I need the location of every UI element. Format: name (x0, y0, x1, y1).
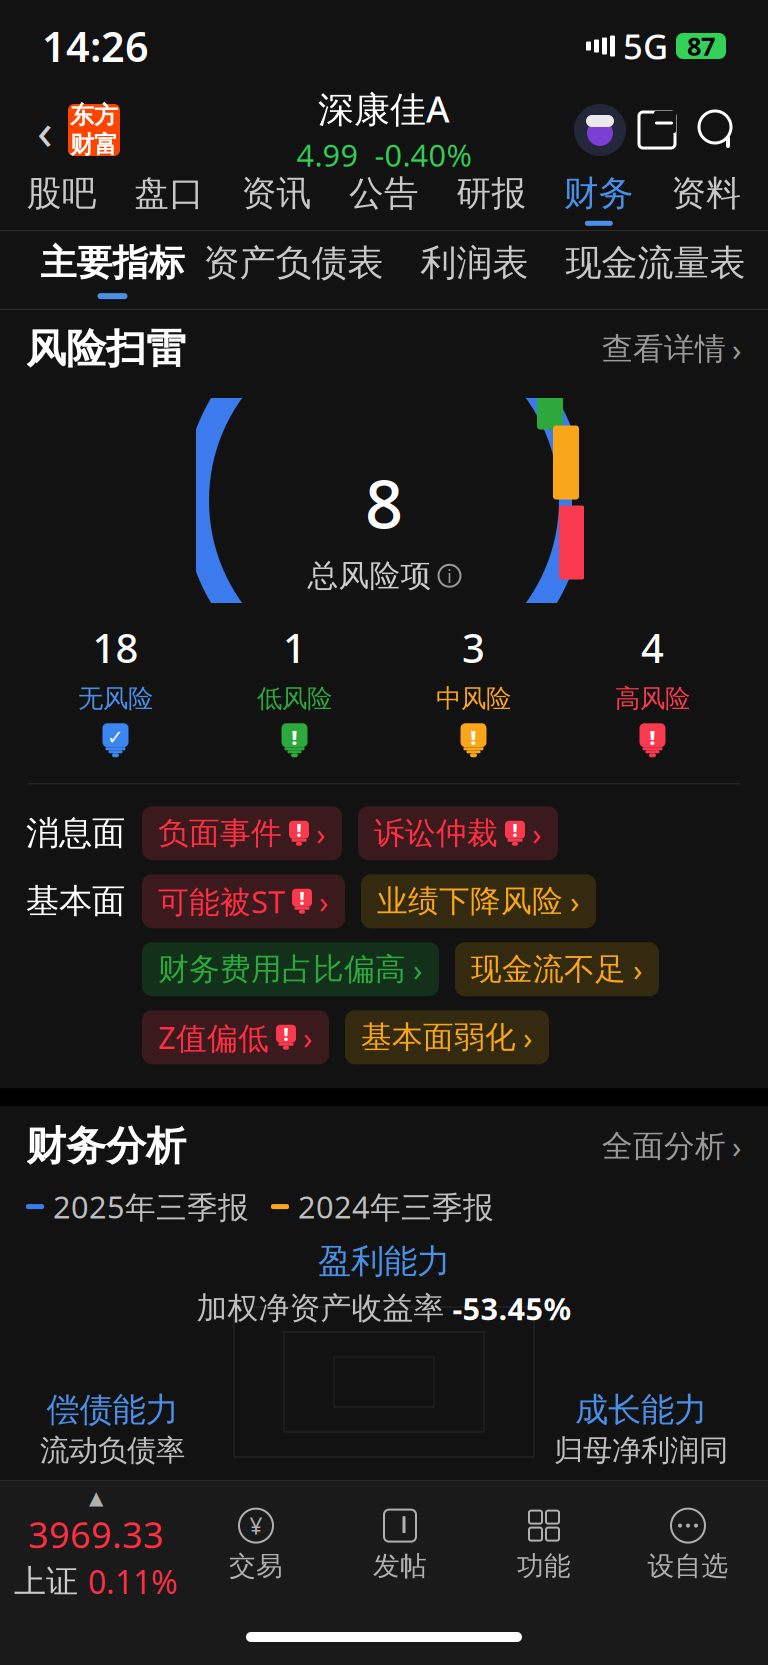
staticText: 设自选 (647, 1550, 728, 1582)
staticText: 公告 (349, 172, 419, 215)
staticText: 3 (462, 621, 485, 674)
button[interactable]: 分享 (626, 99, 688, 161)
staticText: 交易 (229, 1550, 283, 1582)
button[interactable]: 研报 (438, 172, 545, 226)
button[interactable]: 功能 (472, 1502, 616, 1588)
button[interactable]: 股吧 (8, 172, 115, 226)
staticText: 功能 (517, 1550, 571, 1582)
button[interactable]: 现金流不足 (455, 942, 659, 996)
button[interactable]: ¥ (184, 1502, 328, 1588)
staticText: 股吧 (27, 172, 97, 215)
button[interactable]: 财务 (545, 172, 652, 226)
staticText: ▲ (89, 1487, 103, 1508)
staticText: 87 (687, 29, 715, 63)
button[interactable]: Z值偏低 (142, 1010, 329, 1064)
button[interactable]: 负面事件 (142, 806, 342, 860)
staticText: 加权净资产收益率 (196, 1289, 444, 1327)
staticText: 资产负债表 (203, 241, 383, 285)
button[interactable]: 可能被ST (142, 874, 345, 928)
staticText: i (447, 563, 452, 588)
staticText: 8 (365, 458, 403, 547)
staticText: 利润表 (420, 241, 528, 285)
button[interactable]: 东方财富 (68, 100, 120, 159)
staticText: 偿债能力 (46, 1389, 178, 1430)
staticText: 财务费用占比偏高 (158, 950, 406, 988)
staticText: 中风险 (436, 683, 511, 714)
staticText: 深康佳A (318, 85, 450, 132)
staticText: 查看详情 (602, 330, 726, 368)
staticText: 盈利能力 (318, 1241, 450, 1282)
staticText: 财富 (70, 130, 118, 159)
button[interactable]: 现金流量表 (565, 241, 746, 299)
button[interactable]: 基本面弱化 (345, 1010, 549, 1064)
staticText: 总风险项 (307, 557, 431, 595)
staticText: 5G (623, 23, 668, 69)
staticText: 资料 (671, 172, 741, 215)
staticText: › (633, 949, 643, 990)
button[interactable]: 财务费用占比偏高 (142, 942, 439, 996)
button[interactable]: 设自选 (616, 1502, 760, 1588)
staticText: › (732, 329, 742, 369)
staticText: 全面分析 (602, 1127, 726, 1165)
staticText: ! (299, 887, 304, 910)
staticText: › (523, 1017, 533, 1058)
staticText: › (413, 949, 423, 990)
staticText: › (316, 813, 326, 854)
staticText: ! (649, 724, 655, 751)
button[interactable]: 公告 (330, 172, 438, 226)
button[interactable]: 资产负债表 (203, 241, 384, 299)
staticText: ! (470, 724, 476, 751)
staticText: 基本面 (26, 881, 125, 922)
button[interactable]: 诉讼仲裁 (358, 806, 558, 860)
staticText: 可能被ST (158, 881, 285, 922)
button[interactable]: 业绩下降风险 (361, 874, 596, 928)
staticText: ! (291, 724, 297, 751)
staticText: 业绩下降风险 (377, 882, 563, 920)
staticText: -53.45% (452, 1288, 571, 1329)
staticText: 东方 (70, 100, 118, 130)
button[interactable]: 资料 (653, 172, 760, 226)
button[interactable]: ▲ (8, 1483, 184, 1607)
staticText: 1 (283, 621, 306, 674)
button[interactable]: 全面分析 (602, 1126, 742, 1167)
staticText: ! (283, 1023, 288, 1046)
staticText: 发帖 (373, 1550, 427, 1582)
staticText: 低风险 (257, 683, 332, 714)
staticText: 3969.33 (28, 1510, 164, 1558)
button[interactable]: 资讯 (223, 172, 330, 226)
staticText: 风险扫雷 (26, 324, 186, 373)
staticText: ‹ (37, 96, 53, 164)
staticText: Z值偏低 (158, 1017, 269, 1058)
button[interactable]: 盘口 (115, 172, 223, 226)
staticText: 流动负债率 (40, 1432, 185, 1468)
staticText: 0.11% (88, 1560, 178, 1603)
button[interactable]: 查看详情 (602, 329, 742, 369)
staticText: › (570, 881, 580, 922)
button[interactable]: AI助手 (574, 104, 626, 156)
button[interactable]: 利润表 (384, 241, 565, 299)
staticText: 归母净利润同 (554, 1432, 728, 1468)
staticText: ✓ (107, 726, 124, 749)
staticText: 主要指标 (40, 241, 184, 285)
staticText: 18 (92, 621, 138, 674)
staticText: ! (512, 819, 517, 842)
staticText: 2024年三季报 (298, 1186, 494, 1227)
staticText: 研报 (456, 172, 526, 215)
button[interactable]: 返回 (22, 99, 68, 161)
staticText: 上证 (14, 1562, 78, 1601)
staticText: 基本面弱化 (361, 1018, 516, 1056)
staticText: 成长能力 (575, 1389, 707, 1430)
button[interactable]: 主要指标 (22, 241, 203, 299)
staticText: 资讯 (242, 172, 312, 215)
button[interactable]: 搜索 (688, 99, 746, 161)
staticText: 财务分析 (26, 1122, 186, 1171)
staticText: 负面事件 (158, 814, 282, 852)
staticText: 4 (641, 621, 664, 674)
staticText: 盘口 (134, 172, 204, 215)
staticText: 无风险 (78, 683, 153, 714)
staticText: 2025年三季报 (53, 1186, 249, 1227)
staticText: 诉讼仲裁 (374, 814, 498, 852)
staticText: › (319, 881, 329, 922)
staticText: › (532, 813, 542, 854)
button[interactable]: 发帖 (328, 1502, 472, 1588)
